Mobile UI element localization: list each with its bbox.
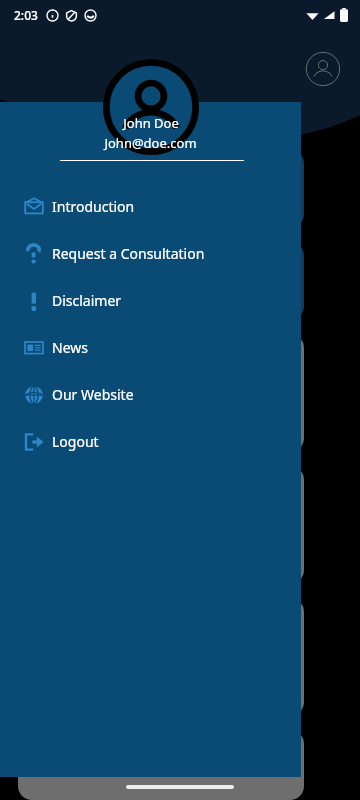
staticText: News xyxy=(52,338,88,357)
button[interactable]: Email Us xyxy=(18,598,304,716)
staticText: Our Website xyxy=(52,385,134,404)
button[interactable]: News xyxy=(0,324,301,371)
staticText: John Doe xyxy=(123,114,179,132)
button[interactable]: Like us on Facebook xyxy=(18,242,304,320)
button[interactable]: Logout xyxy=(0,418,301,465)
button[interactable]: More xyxy=(18,730,304,800)
staticText: 2:03 xyxy=(14,7,38,23)
button[interactable]: Find Us xyxy=(18,466,304,584)
button[interactable]: Profile xyxy=(306,52,340,86)
button[interactable]: Disclaimer xyxy=(0,277,301,324)
button[interactable]: Introduction xyxy=(0,183,301,230)
button[interactable]: Profile photo xyxy=(103,59,199,155)
staticText: John@doe.com xyxy=(104,134,197,152)
staticText: Call Us xyxy=(34,384,79,403)
staticText: Disclaimer xyxy=(52,291,122,310)
button[interactable]: Call Us xyxy=(18,334,304,452)
button[interactable]: Download the App xyxy=(18,150,304,228)
staticText: Introduction xyxy=(52,197,135,216)
button[interactable]: Request a Consultation xyxy=(0,230,301,277)
staticText: Request a Consultation xyxy=(52,244,205,263)
button[interactable]: Our Website xyxy=(0,371,301,418)
staticText: Logout xyxy=(52,432,99,451)
